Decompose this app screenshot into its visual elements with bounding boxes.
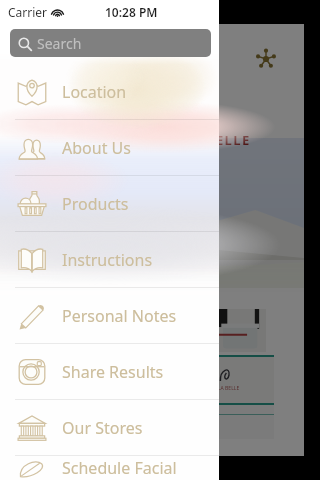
- staticText: Search: [37, 34, 82, 53]
- button[interactable]: Share Results: [0, 344, 219, 399]
- staticText: Our Stores: [62, 417, 143, 439]
- staticText: About Us: [62, 137, 131, 159]
- staticText: Carrier: [8, 4, 48, 20]
- staticText: LA BELLE: [218, 385, 240, 392]
- button[interactable]: Personal Notes: [0, 288, 219, 343]
- staticText: Share Results: [62, 361, 164, 383]
- button[interactable]: Products: [0, 176, 219, 231]
- staticText: Location: [62, 81, 127, 103]
- button[interactable]: Location: [0, 64, 219, 119]
- button[interactable]: Instructions: [0, 232, 219, 287]
- staticText: Products: [62, 193, 129, 215]
- button[interactable]: Search: [10, 29, 211, 57]
- button[interactable]: Schedule Facial: [0, 456, 219, 480]
- staticText: Personal Notes: [62, 305, 177, 327]
- staticText: 10:28 PM: [105, 4, 158, 20]
- staticText: Schedule Facial: [62, 457, 177, 479]
- button[interactable]: About Us: [0, 120, 219, 175]
- staticText: Instructions: [62, 249, 153, 271]
- button[interactable]: Our Stores: [0, 400, 219, 455]
- staticText: LA BELLE: [182, 131, 251, 149]
